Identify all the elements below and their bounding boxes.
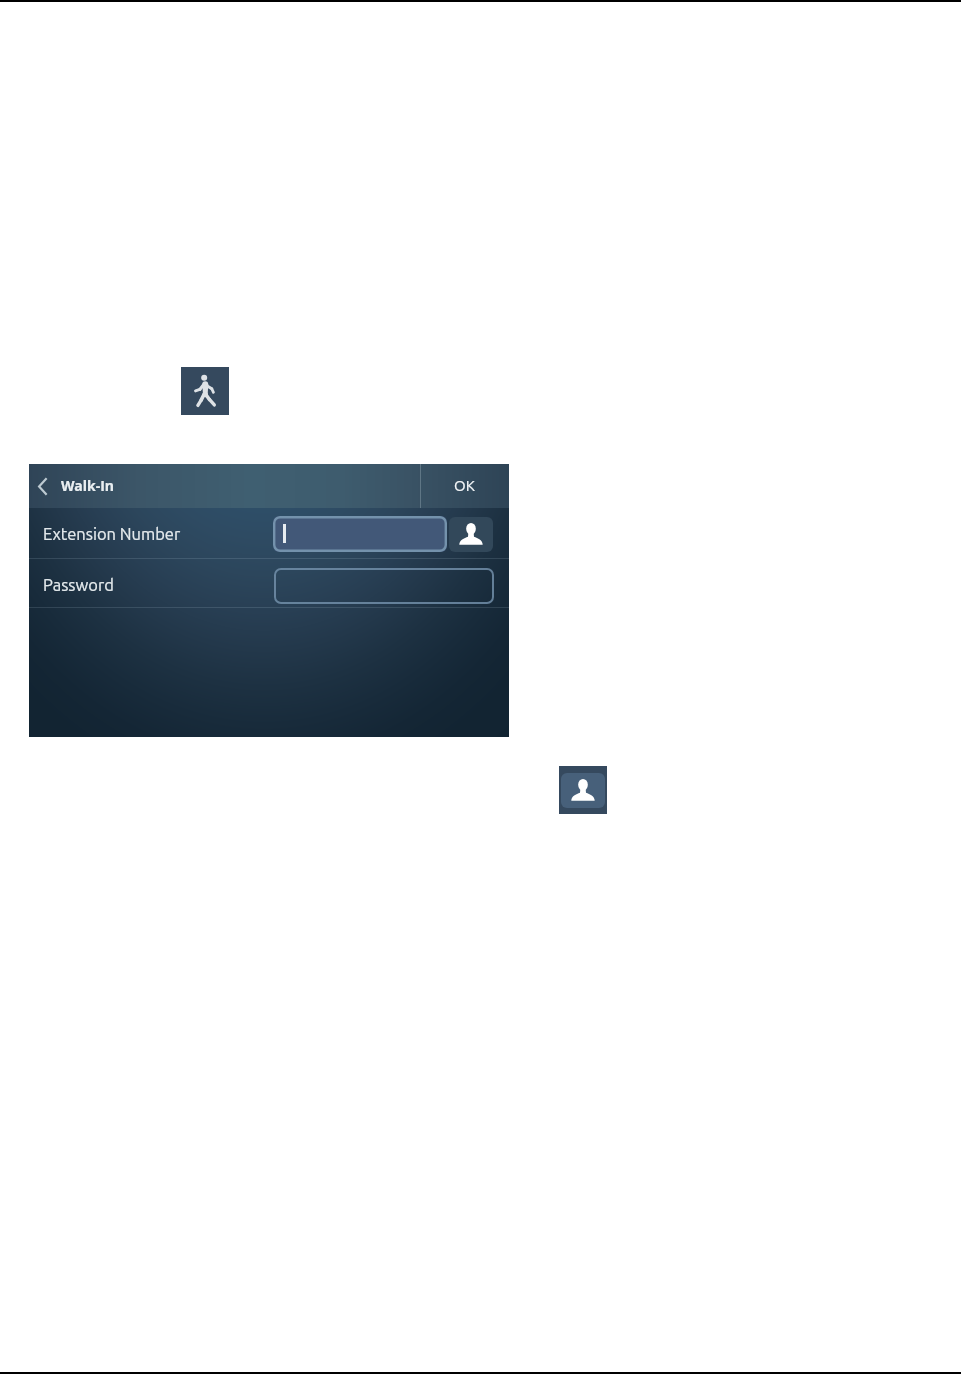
staticText: Password bbox=[43, 576, 114, 594]
button[interactable]: Password bbox=[29, 559, 509, 607]
staticText: Extension Number bbox=[43, 525, 181, 543]
button[interactable] bbox=[273, 516, 447, 552]
button[interactable]: Contacts bbox=[559, 766, 607, 814]
button[interactable]: Choose contact bbox=[449, 517, 493, 552]
staticText: OK bbox=[454, 477, 475, 494]
button[interactable]: Walk-In bbox=[181, 367, 229, 415]
button[interactable]: Extension Number bbox=[29, 508, 509, 558]
button[interactable]: OK bbox=[421, 464, 509, 508]
button[interactable]: Back bbox=[29, 464, 420, 508]
button[interactable] bbox=[274, 568, 494, 604]
staticText: Walk-In bbox=[61, 476, 115, 495]
